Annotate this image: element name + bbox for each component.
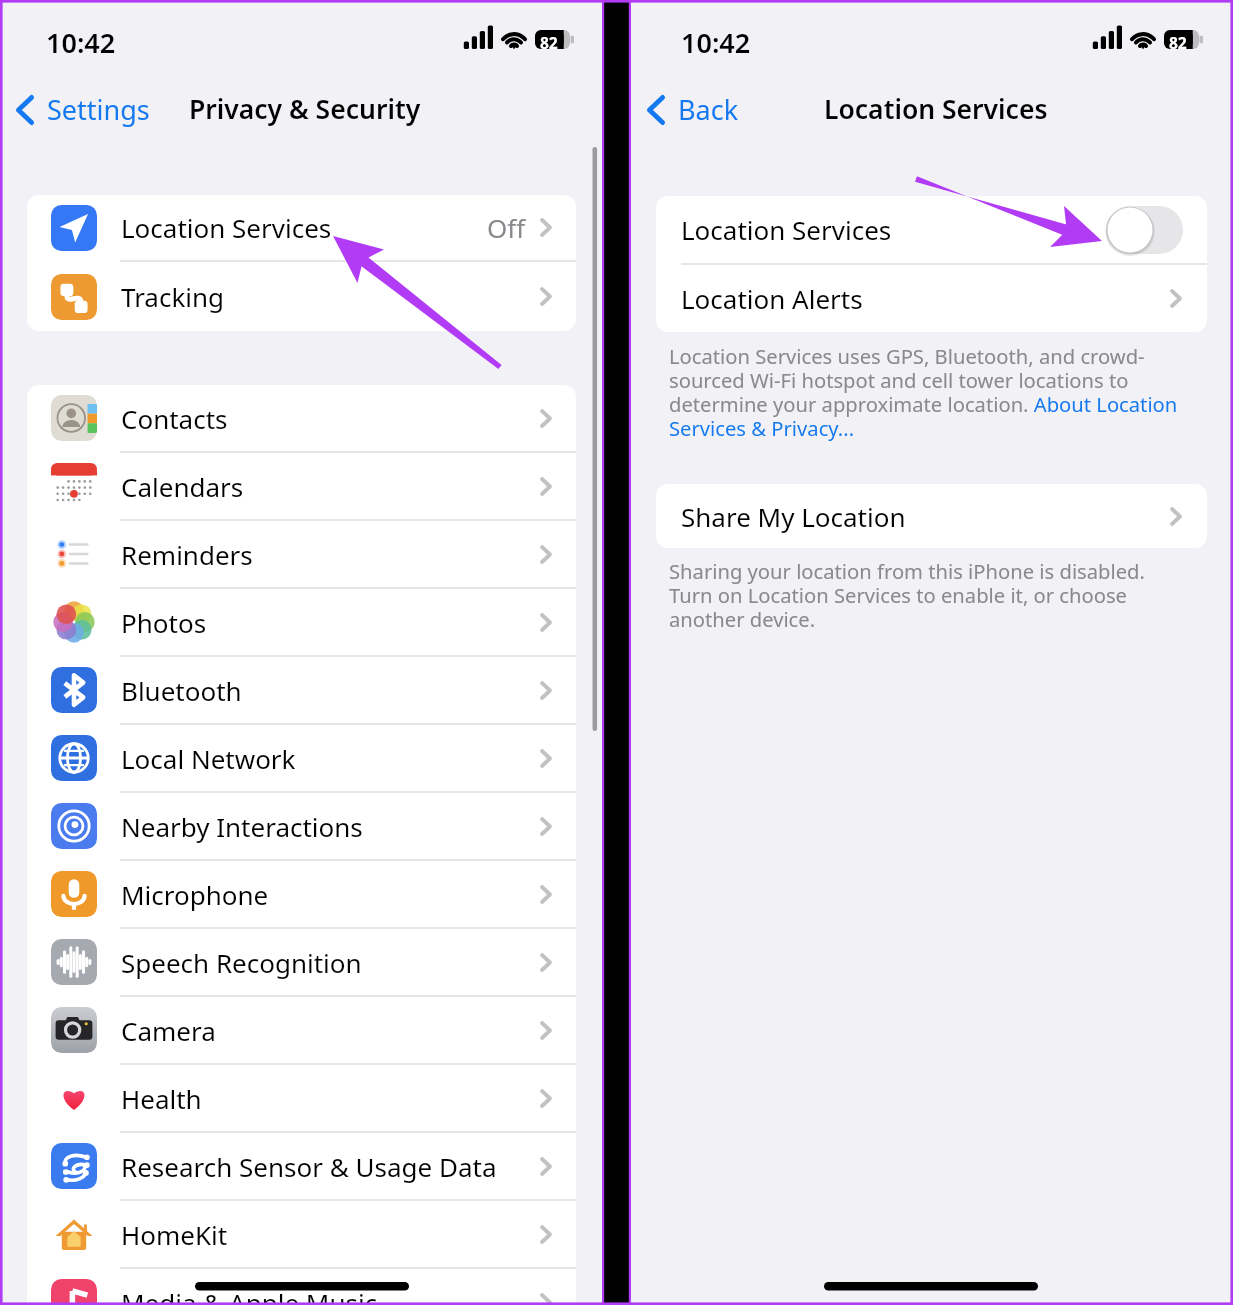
button[interactable]: Location Services toggle, off — [1106, 206, 1183, 254]
staticText: Contacts — [121, 401, 540, 436]
button[interactable]: Location Services — [656, 196, 1207, 263]
button[interactable]: Contacts — [27, 385, 576, 451]
button[interactable]: Nearby Interactions — [27, 793, 576, 859]
staticText: Media & Apple Music — [121, 1285, 540, 1305]
staticText: Research Sensor & Usage Data — [121, 1149, 540, 1184]
staticText: Camera — [121, 1013, 540, 1048]
staticText: 82 — [1169, 32, 1187, 53]
staticText: Privacy & Security — [189, 91, 421, 127]
staticText: Location Services — [121, 210, 487, 245]
button[interactable]: Calendars — [27, 453, 576, 519]
button[interactable]: Microphone — [27, 861, 576, 927]
staticText: Reminders — [121, 537, 540, 572]
staticText: Speech Recognition — [121, 945, 540, 980]
staticText: Share My Location — [681, 499, 1170, 534]
staticText: HomeKit — [121, 1217, 540, 1252]
button[interactable]: Reminders — [27, 521, 576, 587]
button[interactable]: Settings — [16, 91, 150, 128]
staticText: Health — [121, 1081, 540, 1116]
staticText: Calendars — [121, 469, 540, 504]
staticText: Microphone — [121, 877, 540, 912]
staticText: Photos — [121, 605, 540, 640]
staticText: 82 — [540, 32, 558, 53]
staticText: Bluetooth — [121, 673, 540, 708]
button[interactable]: Health — [27, 1065, 576, 1131]
button[interactable]: Camera — [27, 997, 576, 1063]
button[interactable]: Speech Recognition — [27, 929, 576, 995]
staticText: Location Services — [824, 91, 1048, 127]
staticText: 10:42 — [681, 24, 751, 61]
staticText: Location Alerts — [681, 281, 1170, 316]
button[interactable]: Photos — [27, 589, 576, 655]
staticText: Location Services — [681, 212, 1106, 247]
button[interactable]: Bluetooth — [27, 657, 576, 723]
staticText: 10:42 — [46, 24, 116, 61]
button[interactable]: Location Services — [27, 195, 576, 260]
button[interactable]: Media & Apple Music — [27, 1269, 576, 1305]
staticText: Back — [678, 91, 739, 128]
button[interactable]: Local Network — [27, 725, 576, 791]
button[interactable]: Location Alerts — [656, 265, 1207, 332]
staticText: Tracking — [121, 279, 540, 314]
staticText: Location Services uses GPS, Bluetooth, a… — [669, 342, 1178, 442]
button[interactable]: Share My Location — [656, 484, 1207, 548]
staticText: Sharing your location from this iPhone i… — [669, 557, 1145, 633]
button[interactable]: Research Sensor & Usage Data — [27, 1133, 576, 1199]
staticText: Off — [487, 210, 526, 245]
button[interactable]: HomeKit — [27, 1201, 576, 1267]
staticText: Settings — [47, 91, 150, 128]
staticText: Nearby Interactions — [121, 809, 540, 844]
staticText: Local Network — [121, 741, 540, 776]
button[interactable]: Tracking — [27, 262, 576, 331]
button[interactable]: Back — [647, 91, 739, 128]
